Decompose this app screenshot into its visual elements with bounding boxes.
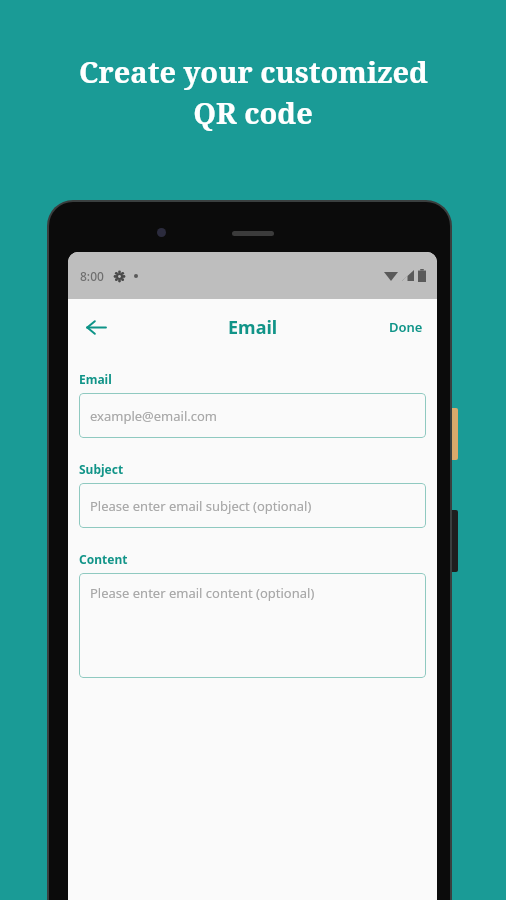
staticText: Done [389,318,423,336]
staticText: 8:00 [80,268,104,284]
button[interactable]: example@email.com [79,393,426,438]
staticText: Create your customized [79,52,428,91]
button[interactable]: Done [375,306,437,348]
button[interactable]: Please enter email subject (optional) [79,483,426,528]
staticText: Content [79,551,128,567]
staticText: Email [228,315,278,340]
button[interactable]: Back [74,305,118,349]
staticText: Please enter email subject (optional) [90,497,312,515]
button[interactable]: Please enter email content (optional) [79,573,426,678]
staticText: Email [79,371,112,387]
staticText: example@email.com [90,407,217,425]
staticText: Subject [79,461,124,477]
staticText: Please enter email content (optional) [90,584,315,602]
staticText: QR code [193,93,313,132]
